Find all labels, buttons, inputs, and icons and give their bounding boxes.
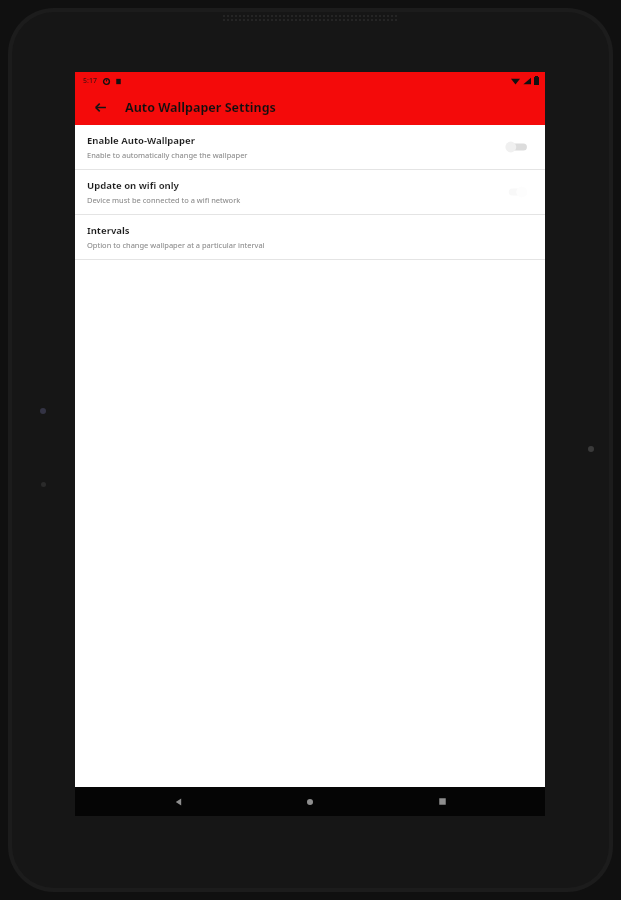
staticText: Enable Auto-Wallpaper bbox=[87, 134, 195, 147]
button[interactable]: Enable Auto-Wallpaper toggle bbox=[503, 139, 529, 155]
staticText: Intervals bbox=[87, 224, 130, 237]
button[interactable]: Recent apps bbox=[414, 787, 470, 816]
staticText: Device must be connected to a wifi netwo… bbox=[87, 195, 241, 205]
button[interactable]: Home bbox=[282, 787, 338, 816]
button[interactable]: Back bbox=[151, 787, 207, 816]
staticText: Enable to automatically change the wallp… bbox=[87, 150, 248, 160]
button[interactable]: Update on wifi only bbox=[75, 170, 545, 214]
button[interactable]: Enable Auto-Wallpaper bbox=[75, 125, 545, 169]
staticText: Option to change wallpaper at a particul… bbox=[87, 240, 265, 250]
staticText: Auto Wallpaper Settings bbox=[125, 99, 276, 116]
button[interactable]: Back bbox=[87, 94, 113, 120]
staticText: 5:17 bbox=[83, 76, 97, 86]
button[interactable]: Intervals bbox=[75, 215, 545, 259]
staticText: Update on wifi only bbox=[87, 179, 180, 192]
